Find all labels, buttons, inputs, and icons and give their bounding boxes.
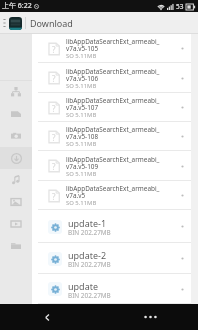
button[interactable]: Downloads (0, 147, 32, 169)
button[interactable]: ? (32, 93, 191, 122)
button[interactable]: More options (0, 12, 9, 34)
button[interactable]: More (173, 243, 191, 274)
staticText: SO 5.11MB (66, 82, 97, 90)
button[interactable]: Documents (0, 103, 32, 125)
staticText: v7a.v5-109 (66, 162, 99, 171)
staticText: ? (52, 161, 56, 172)
staticText: Download (30, 17, 73, 29)
staticText: ? (52, 191, 56, 202)
staticText: libAppDataSearchExt_armeabi_ (66, 184, 160, 193)
button[interactable]: More (173, 181, 191, 210)
button[interactable]: Videos (0, 213, 32, 235)
button[interactable]: ? (32, 122, 191, 151)
button[interactable]: ? (32, 63, 191, 93)
staticText: ? (52, 73, 56, 84)
button[interactable]: More (173, 210, 191, 243)
staticText: BIN 202.27MB (68, 291, 111, 300)
staticText: 53 (176, 2, 184, 11)
button[interactable]: update (32, 274, 191, 304)
staticText: v7a.v5 (66, 191, 86, 200)
button[interactable]: Camera (0, 125, 32, 147)
button[interactable]: More (173, 151, 191, 181)
staticText: libAppDataSearchExt_armeabi_ (66, 37, 160, 46)
button[interactable]: More (173, 122, 191, 151)
staticText: libAppDataSearchExt_armeabi_ (66, 96, 160, 105)
button[interactable]: update-2 (32, 243, 191, 274)
button[interactable]: Images (0, 191, 32, 213)
button[interactable]: More (173, 63, 191, 93)
staticText: SO 5.11MB (66, 170, 97, 178)
button[interactable]: Categories (0, 81, 32, 103)
staticText: v7a.v5-107 (66, 103, 99, 112)
staticText: ? (52, 44, 56, 55)
button[interactable]: Storage (9, 17, 22, 30)
button[interactable]: Music (0, 169, 32, 191)
button[interactable]: Back (38, 308, 56, 326)
staticText: v7a.v5-108 (66, 132, 99, 141)
button[interactable]: Archives (0, 235, 32, 257)
staticText: SO 5.11MB (66, 140, 97, 148)
button[interactable]: More (173, 34, 191, 63)
staticText: update-2 (68, 249, 107, 261)
button[interactable]: ? (32, 181, 191, 210)
staticText: update-1 (68, 217, 107, 229)
staticText: BIN 202.27MB (68, 260, 111, 269)
button[interactable]: Recent apps (140, 307, 160, 327)
staticText: 上午 6:22 (2, 1, 32, 11)
staticText: SO 5.11MB (66, 52, 97, 60)
staticText: BIN 202.27MB (68, 228, 111, 237)
staticText: ? (52, 103, 56, 114)
button[interactable]: ? (32, 151, 191, 181)
staticText: ? (52, 132, 56, 143)
staticText: v7a.v5-106 (66, 74, 99, 83)
staticText: SO 5.11MB (66, 111, 97, 119)
staticText: v7a.v5-105 (66, 44, 99, 53)
button[interactable]: ? (32, 34, 191, 63)
staticText: libAppDataSearchExt_armeabi_ (66, 67, 160, 76)
staticText: update (68, 280, 99, 292)
button[interactable]: More (173, 93, 191, 122)
button[interactable]: More (173, 274, 191, 304)
staticText: libAppDataSearchExt_armeabi_ (66, 155, 160, 164)
staticText: libAppDataSearchExt_armeabi_ (66, 125, 160, 134)
staticText: SO 5.11MB (66, 199, 97, 207)
button[interactable]: update-1 (32, 210, 191, 243)
